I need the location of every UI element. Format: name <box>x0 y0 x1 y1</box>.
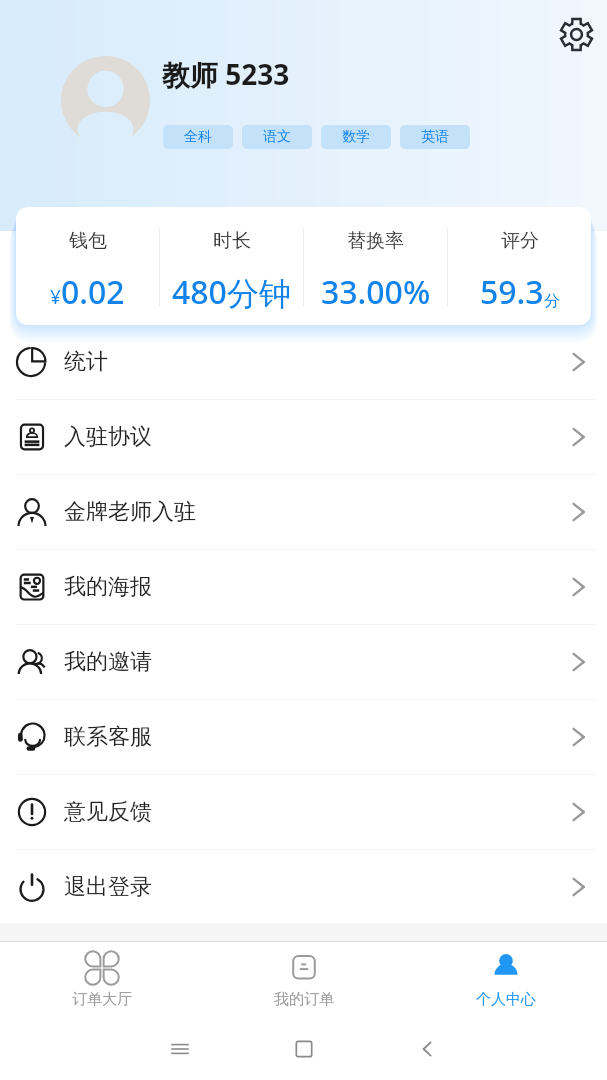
button[interactable]: 英语 <box>400 125 470 149</box>
button[interactable]: Recents <box>160 1029 200 1069</box>
button[interactable]: 订单大厅 <box>0 942 203 1009</box>
staticText: 数学 <box>342 128 370 146</box>
staticText: 分 <box>544 291 560 311</box>
staticText: 教师 5233 <box>162 55 290 93</box>
button[interactable]: 意见反馈 <box>0 775 607 849</box>
button[interactable]: 全科 <box>163 125 233 149</box>
staticText: 个人中心 <box>476 990 536 1009</box>
button[interactable]: Home <box>284 1029 324 1069</box>
button[interactable]: Settings <box>554 12 598 56</box>
button[interactable]: 个人中心 <box>405 942 607 1009</box>
staticText: 评分 <box>501 229 539 253</box>
staticText: 我的邀请 <box>64 648 152 676</box>
button[interactable]: 入驻协议 <box>0 400 607 474</box>
button[interactable]: 我的订单 <box>203 942 405 1009</box>
button[interactable]: 统计 <box>0 325 607 399</box>
staticText: 时长 <box>213 229 251 253</box>
staticText: 59.3 <box>480 270 544 314</box>
button[interactable]: Back <box>408 1029 448 1069</box>
staticText: 替换率 <box>347 229 404 253</box>
staticText: 退出登录 <box>64 873 152 901</box>
staticText: 0.02 <box>61 270 125 314</box>
staticText: 联系客服 <box>64 723 152 751</box>
button[interactable]: 数学 <box>321 125 391 149</box>
staticText: 我的订单 <box>274 990 334 1009</box>
button[interactable]: 我的邀请 <box>0 625 607 699</box>
button[interactable]: 退出登录 <box>0 850 607 924</box>
button[interactable]: 语文 <box>242 125 312 149</box>
button[interactable]: 我的海报 <box>0 550 607 624</box>
staticText: 订单大厅 <box>72 990 132 1009</box>
staticText: 金牌老师入驻 <box>64 498 196 526</box>
staticText: 480 <box>172 270 227 314</box>
staticText: 语文 <box>263 128 291 146</box>
staticText: 分钟 <box>227 274 291 314</box>
staticText: 全科 <box>184 128 212 146</box>
staticText: 我的海报 <box>64 573 152 601</box>
staticText: 意见反馈 <box>64 798 152 826</box>
staticText: ¥ <box>50 284 61 310</box>
button[interactable]: 金牌老师入驻 <box>0 475 607 549</box>
staticText: 英语 <box>421 128 449 146</box>
button[interactable]: 联系客服 <box>0 700 607 774</box>
staticText: 33.00% <box>321 270 431 314</box>
staticText: 钱包 <box>69 229 107 253</box>
staticText: 统计 <box>64 348 108 376</box>
staticText: 入驻协议 <box>64 423 152 451</box>
